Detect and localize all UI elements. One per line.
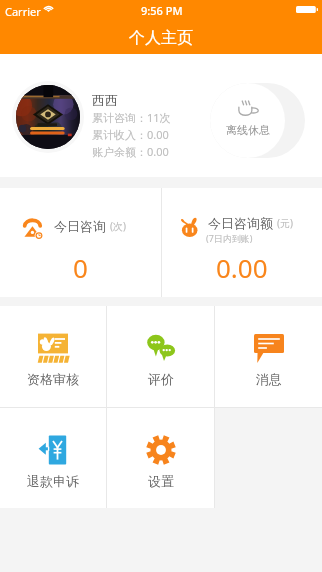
staticText: 累计咨询：11次 xyxy=(92,110,171,125)
button[interactable]: 资格审核 xyxy=(0,306,106,407)
staticText: 累计收入：0.00 xyxy=(92,127,169,142)
staticText: (元) xyxy=(277,216,293,230)
button[interactable]: 设置 xyxy=(107,408,214,508)
button[interactable] xyxy=(162,188,322,297)
staticText: Carrier xyxy=(5,4,41,19)
staticText: (7日内到账) xyxy=(206,232,253,244)
button[interactable]: 评价 xyxy=(107,306,214,407)
staticText: 个人主页 xyxy=(129,28,193,48)
button[interactable]: 头像 xyxy=(12,81,84,153)
staticText: 退款申诉 xyxy=(27,473,79,489)
staticText: 今日咨询额 xyxy=(208,215,273,231)
staticText: 设置 xyxy=(148,473,174,489)
staticText: 0 xyxy=(73,250,88,285)
staticText: 账户余额：0.00 xyxy=(92,144,169,159)
staticText: 离线休息 xyxy=(226,123,270,137)
staticText: 9:56 PM xyxy=(141,3,183,18)
staticText: 0.00 xyxy=(216,250,268,285)
staticText: (次) xyxy=(110,219,126,233)
staticText: 资格审核 xyxy=(27,371,79,387)
staticText: 今日咨询 xyxy=(54,218,106,234)
staticText: 评价 xyxy=(148,371,174,387)
staticText: 消息 xyxy=(256,371,282,387)
staticText: 西西 xyxy=(92,92,118,108)
button[interactable]: 离线休息 xyxy=(210,83,305,158)
button[interactable]: 消息 xyxy=(215,306,322,407)
button[interactable] xyxy=(0,188,161,297)
button[interactable]: 退款申诉 xyxy=(0,408,106,508)
